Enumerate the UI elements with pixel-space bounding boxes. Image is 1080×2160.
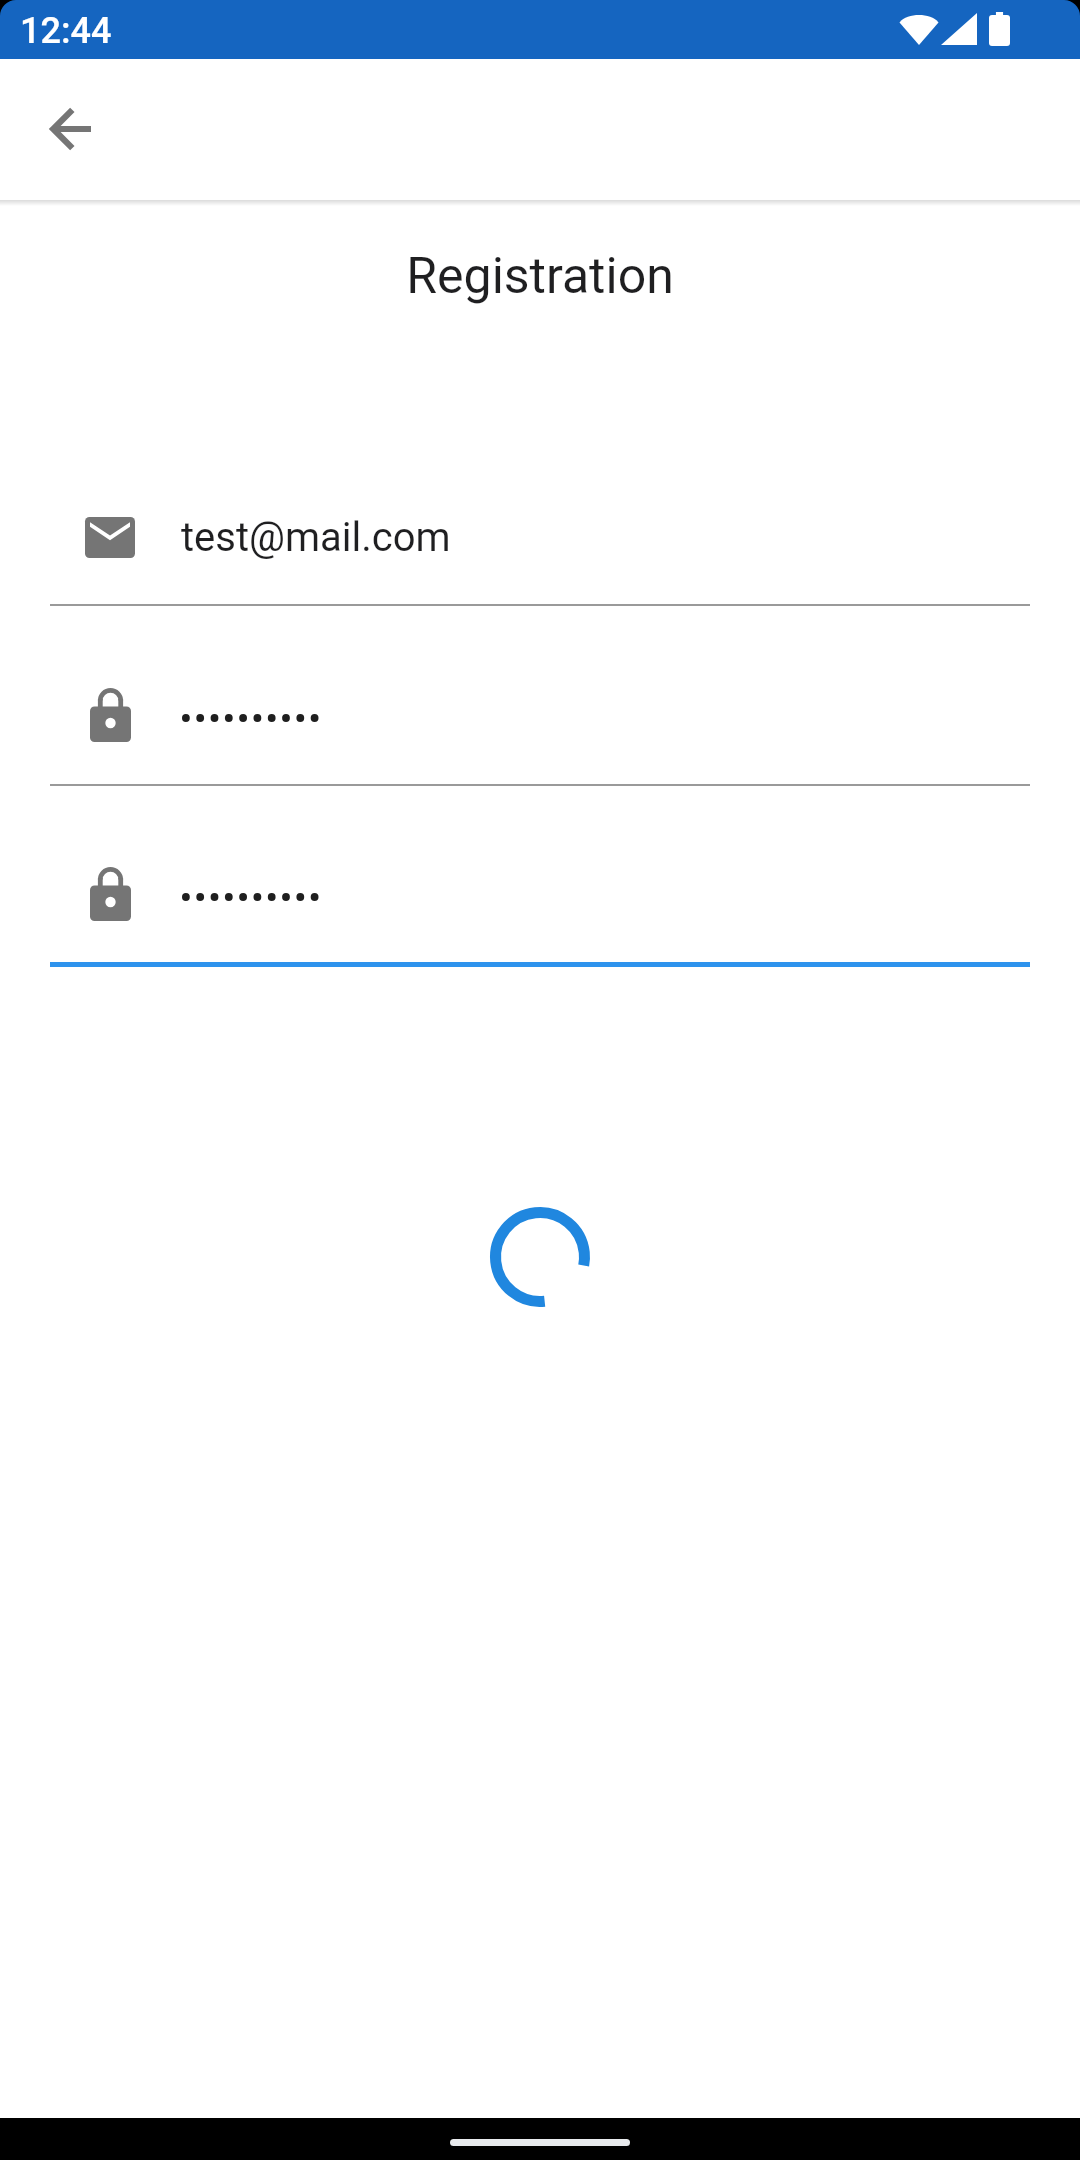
button[interactable]: Navigate up: [22, 81, 118, 177]
button[interactable]: [50, 676, 1030, 786]
button[interactable]: test@mail.com: [50, 495, 1030, 606]
staticText: 12:44: [20, 10, 112, 52]
other: Battery: [989, 12, 1010, 46]
button[interactable]: [50, 855, 1030, 967]
button[interactable]: Home: [450, 2139, 630, 2146]
other: Wi-Fi: [899, 12, 939, 45]
staticText: Registration: [0, 247, 1080, 306]
staticText: test@mail.com: [181, 514, 451, 561]
other: Loading: [490, 1207, 590, 1307]
other: Mobile signal: [941, 13, 977, 45]
